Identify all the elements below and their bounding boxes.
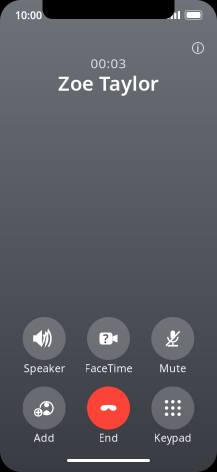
staticText: Add (34, 430, 55, 445)
staticText: Keypad (154, 430, 192, 445)
button[interactable]: ? (76, 317, 141, 373)
staticText: Speaker (24, 361, 65, 375)
staticText: Mute (159, 361, 186, 375)
staticText: 00:03 (90, 54, 126, 72)
button[interactable]: End (76, 386, 141, 443)
staticText: ? (103, 330, 109, 346)
button[interactable]: Mute (141, 317, 205, 373)
staticText: i (196, 41, 199, 55)
button[interactable]: Speaker (12, 317, 76, 373)
button[interactable]: Add (12, 386, 76, 443)
staticText: Zoe Taylor (58, 70, 159, 96)
staticText: End (98, 430, 118, 445)
button[interactable]: Keypad (141, 386, 205, 443)
staticText: 10:00 (15, 8, 42, 22)
button[interactable]: Call details (187, 37, 209, 59)
staticText: FaceTime (84, 361, 132, 375)
